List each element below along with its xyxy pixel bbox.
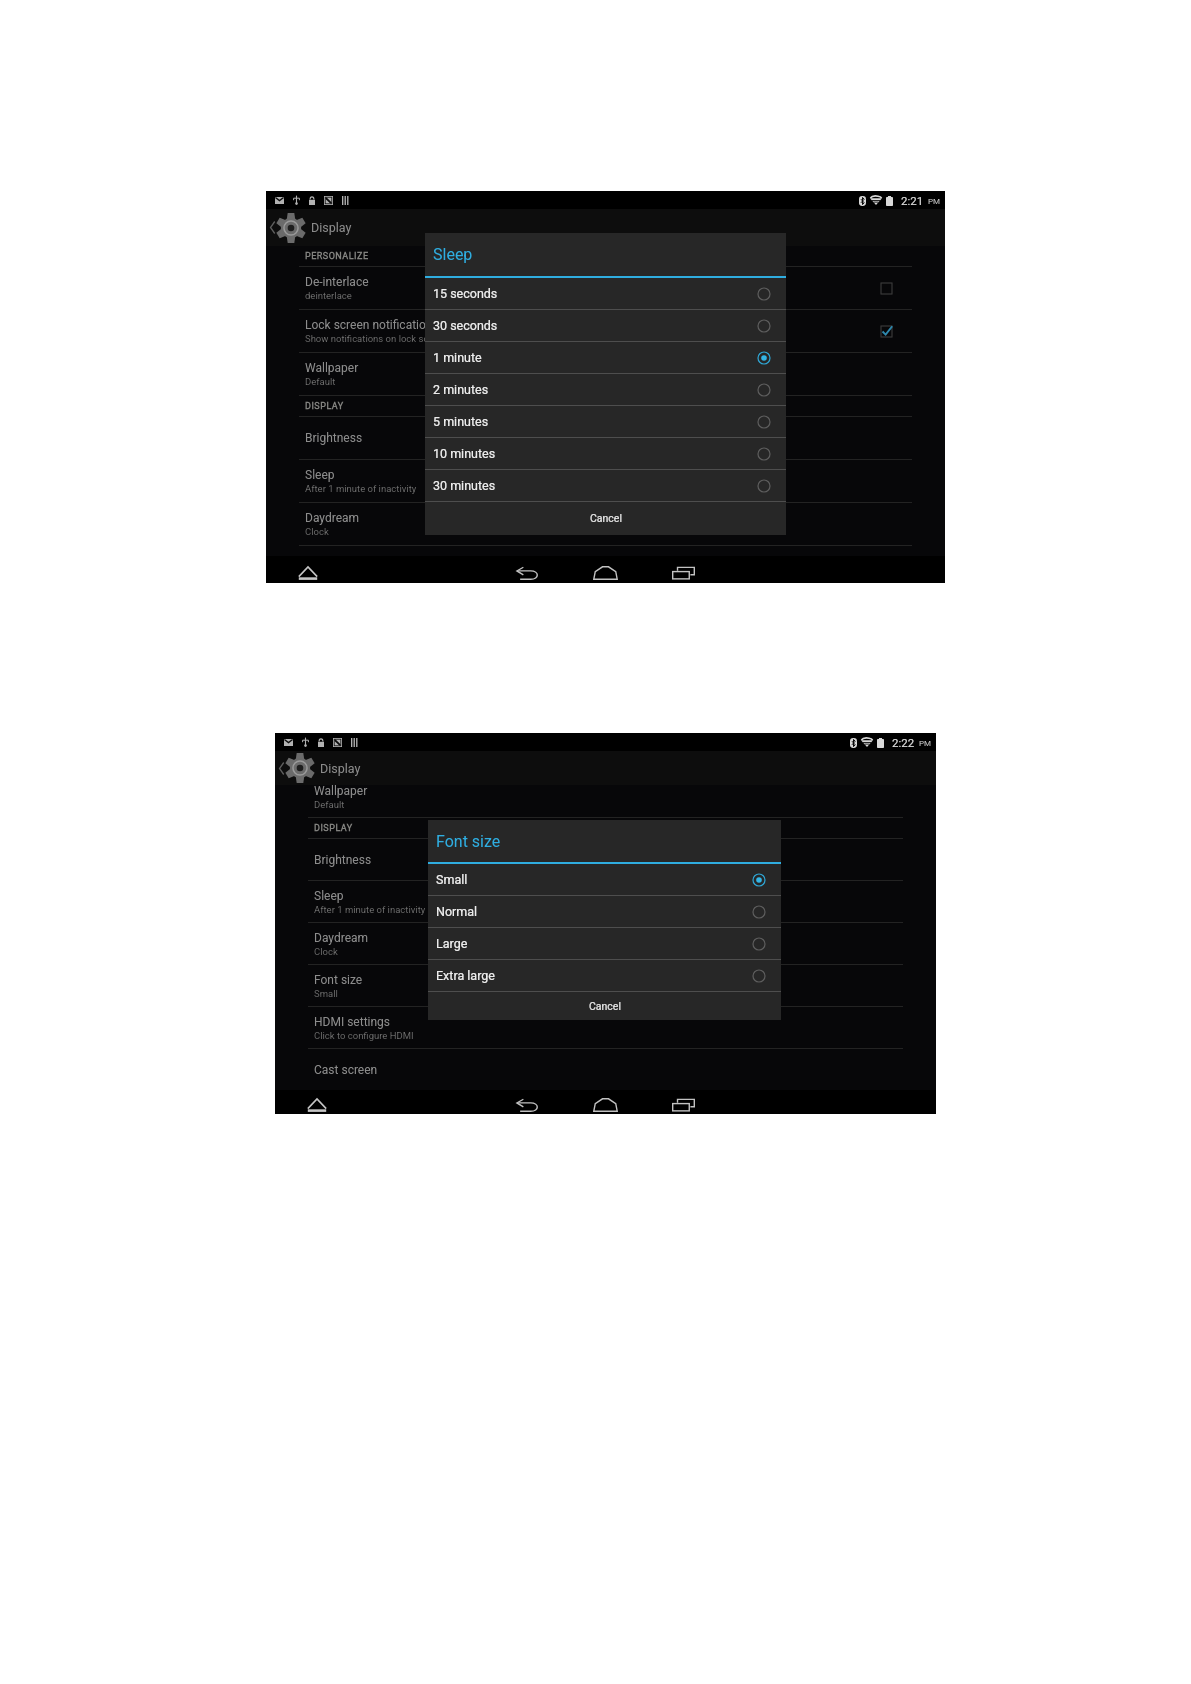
staticText: Default	[314, 799, 345, 810]
staticText: After 1 minute of inactivity	[305, 483, 417, 494]
staticText: 30 seconds	[433, 318, 757, 333]
button[interactable]: Eject	[305, 1093, 329, 1117]
button[interactable]: Navigate up	[275, 751, 320, 785]
staticText: Clock	[305, 526, 329, 537]
staticText: PERSONALIZE	[305, 251, 945, 262]
staticText: Default	[305, 376, 336, 387]
button[interactable]: Brightness	[266, 417, 945, 460]
staticText: PM	[928, 197, 941, 206]
staticText: Lock screen notifications	[305, 318, 439, 332]
button[interactable]: Lock screen notifications	[266, 310, 945, 353]
staticText: Click to configure HDMI	[314, 1030, 414, 1041]
button[interactable]: 30 minutes	[425, 470, 786, 502]
button[interactable]: 30 seconds	[425, 310, 786, 342]
button[interactable]: 10 minutes	[425, 438, 786, 470]
staticText: 2:21	[901, 194, 924, 207]
staticText: Daydream	[314, 931, 369, 945]
staticText: Clock	[314, 946, 338, 957]
button[interactable]: Brightness	[275, 839, 936, 881]
staticText: Daydream	[305, 511, 360, 525]
button[interactable]: Wallpaper	[266, 353, 945, 396]
button[interactable]: Daydream	[275, 923, 936, 965]
staticText: Display	[311, 220, 352, 235]
staticText: deinterlace	[305, 290, 352, 301]
button[interactable]: De-interlace	[266, 267, 945, 310]
staticText: 2:22	[892, 736, 915, 749]
button[interactable]: Navigate up	[266, 209, 311, 246]
button[interactable]: Toggle setting	[876, 278, 896, 298]
staticText: Brightness	[314, 853, 372, 867]
button[interactable]: Home	[590, 561, 620, 585]
staticText: Sleep	[433, 245, 473, 264]
button[interactable]: Cast screen	[275, 1049, 936, 1090]
staticText: Sleep	[305, 468, 335, 482]
staticText: Show notifications on lock screen	[305, 333, 447, 344]
button[interactable]: Cancel	[428, 992, 781, 1020]
button[interactable]: 15 seconds	[425, 278, 786, 310]
staticText: De-interlace	[305, 275, 369, 289]
staticText: 15 seconds	[433, 286, 757, 301]
button[interactable]: Normal	[428, 896, 781, 928]
button[interactable]: Cancel	[425, 502, 786, 534]
button[interactable]: Large	[428, 928, 781, 960]
button[interactable]: 2 minutes	[425, 374, 786, 406]
button[interactable]: Back	[512, 561, 542, 585]
button[interactable]: Eject	[296, 561, 320, 585]
button[interactable]: Sleep	[275, 881, 936, 923]
button[interactable]: Font size	[275, 965, 936, 1007]
staticText: 1 minute	[433, 350, 757, 365]
staticText: Extra large	[436, 968, 752, 983]
button[interactable]: Sleep	[266, 460, 945, 503]
staticText: Cancel	[590, 512, 622, 524]
staticText: Wallpaper	[314, 785, 368, 798]
staticText: Large	[436, 936, 752, 951]
button[interactable]: Extra large	[428, 960, 781, 992]
staticText: Brightness	[305, 431, 363, 445]
button[interactable]: 5 minutes	[425, 406, 786, 438]
staticText: Cancel	[589, 1000, 621, 1012]
staticText: Wallpaper	[305, 361, 359, 375]
staticText: DISPLAY	[305, 401, 945, 412]
staticText: After 1 minute of inactivity	[314, 904, 426, 915]
staticText: Small	[314, 988, 338, 999]
button[interactable]: HDMI settings	[275, 1007, 936, 1049]
button[interactable]: Daydream	[266, 503, 945, 546]
button[interactable]: Home	[590, 1093, 620, 1117]
button[interactable]: Small	[428, 864, 781, 896]
button[interactable]: Recent apps	[668, 1093, 698, 1117]
staticText: HDMI settings	[314, 1015, 391, 1029]
staticText: Font size	[314, 973, 363, 987]
staticText: 30 minutes	[433, 478, 757, 493]
staticText: Normal	[436, 904, 752, 919]
staticText: Display	[320, 761, 361, 776]
staticText: 5 minutes	[433, 414, 757, 429]
staticText: Cast screen	[314, 1063, 378, 1077]
staticText: 10 minutes	[433, 446, 757, 461]
staticText: DISPLAY	[314, 823, 936, 834]
button[interactable]: Toggle setting	[876, 321, 896, 341]
staticText: 2 minutes	[433, 382, 757, 397]
staticText: Small	[436, 872, 752, 887]
staticText: PM	[919, 739, 932, 748]
button[interactable]: Wallpaper	[275, 785, 936, 818]
button[interactable]: Recent apps	[668, 561, 698, 585]
staticText: Sleep	[314, 889, 344, 903]
staticText: Font size	[436, 832, 501, 851]
button[interactable]: Back	[512, 1093, 542, 1117]
button[interactable]: 1 minute	[425, 342, 786, 374]
